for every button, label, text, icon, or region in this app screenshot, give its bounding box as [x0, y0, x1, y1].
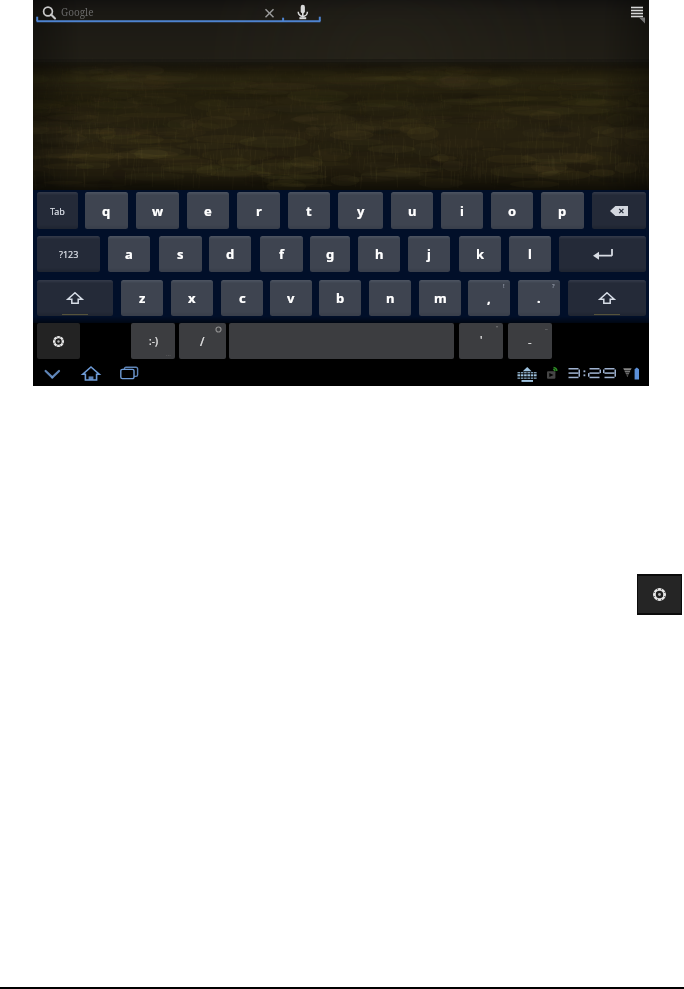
button[interactable]: -: [508, 323, 552, 359]
button[interactable]: Keyboard: [517, 367, 538, 382]
button[interactable]: Cast screen: [545, 366, 559, 381]
button[interactable]: i: [441, 192, 483, 229]
staticText: x: [188, 289, 196, 307]
button[interactable]: Recent apps: [120, 366, 139, 380]
button[interactable]: n: [369, 280, 411, 316]
staticText: k: [476, 245, 485, 263]
staticText: w: [152, 202, 164, 220]
button[interactable]: o: [491, 192, 533, 229]
staticText: e: [204, 202, 212, 220]
staticText: t: [306, 202, 312, 220]
staticText: m: [434, 289, 447, 307]
button[interactable]: x: [171, 280, 213, 316]
staticText: q: [102, 202, 111, 220]
button[interactable]: [559, 236, 646, 272]
staticText: _: [545, 323, 548, 331]
button[interactable]: e: [187, 192, 229, 229]
button[interactable]: p: [541, 192, 584, 229]
button[interactable]: l: [509, 236, 551, 272]
staticText: b: [336, 289, 345, 307]
button[interactable]: ,: [468, 280, 510, 316]
staticText: !: [503, 282, 505, 290]
button[interactable]: .: [518, 280, 560, 316]
staticText: ,: [487, 289, 491, 307]
staticText: Tab: [50, 205, 65, 217]
button[interactable]: f: [260, 236, 303, 272]
staticText: n: [386, 289, 395, 307]
button[interactable]: ': [459, 323, 503, 359]
staticText: i: [460, 202, 464, 220]
staticText: ...: [166, 350, 171, 358]
staticText: r: [256, 202, 262, 220]
staticText: y: [357, 202, 365, 220]
staticText: v: [287, 289, 295, 307]
staticText: :-): [149, 334, 158, 348]
button[interactable]: m: [419, 280, 461, 316]
button[interactable]: Home: [82, 366, 100, 381]
button[interactable]: c: [221, 280, 263, 316]
button[interactable]: [592, 192, 646, 229]
button[interactable]: Hide keyboard: [44, 368, 61, 380]
staticText: ?: [552, 282, 555, 290]
button[interactable]: [37, 280, 113, 316]
staticText: a: [125, 245, 133, 263]
button[interactable]: g: [310, 236, 350, 272]
staticText: z: [139, 289, 146, 307]
staticText: ": [496, 324, 499, 332]
button[interactable]: q: [85, 192, 128, 229]
button[interactable]: j: [408, 236, 450, 272]
button[interactable]: z: [121, 280, 163, 316]
staticText: o: [508, 202, 517, 220]
button[interactable]: Tab: [37, 192, 78, 229]
button[interactable]: [568, 280, 646, 316]
button[interactable]: Keyboard settings: [638, 576, 681, 613]
staticText: Google: [61, 5, 94, 19]
staticText: p: [558, 202, 567, 220]
staticText: h: [375, 245, 384, 263]
button[interactable]: y: [338, 192, 383, 229]
staticText: u: [408, 202, 417, 220]
button[interactable]: a: [108, 236, 150, 272]
button[interactable]: Menu: [627, 3, 647, 23]
staticText: /: [200, 333, 205, 349]
button[interactable]: /: [179, 323, 226, 359]
staticText: l: [528, 245, 532, 263]
staticText: d: [226, 245, 235, 263]
button[interactable]: d: [209, 236, 251, 272]
button[interactable]: h: [358, 236, 400, 272]
button[interactable]: t: [288, 192, 330, 229]
button[interactable]: ?123: [37, 236, 100, 272]
button[interactable]: [37, 323, 80, 359]
button[interactable]: s: [159, 236, 202, 272]
staticText: .: [537, 289, 541, 307]
button[interactable]: r: [237, 192, 280, 229]
staticText: j: [427, 245, 431, 263]
staticText: -: [528, 334, 532, 349]
button[interactable]: u: [391, 192, 433, 229]
staticText: c: [239, 289, 246, 307]
button[interactable]: w: [136, 192, 179, 229]
staticText: ': [480, 332, 483, 347]
button[interactable]: :-): [131, 323, 175, 359]
button[interactable]: b: [319, 280, 361, 316]
button[interactable]: v: [270, 280, 312, 316]
staticText: g: [326, 245, 335, 263]
button[interactable]: k: [459, 236, 501, 272]
staticText: ?123: [59, 248, 79, 260]
staticText: s: [177, 245, 184, 263]
staticText: f: [279, 245, 285, 263]
